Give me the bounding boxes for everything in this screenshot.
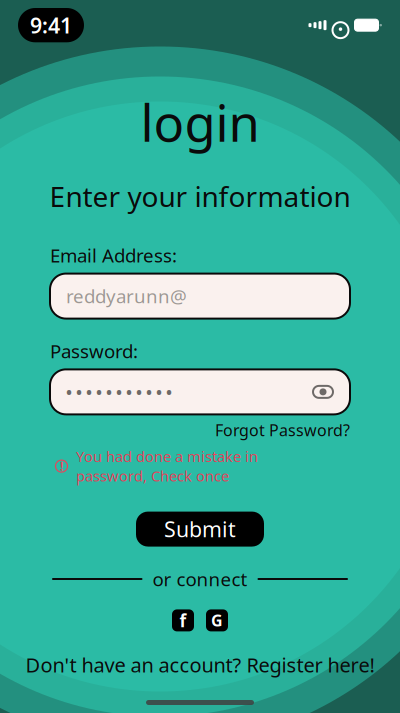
staticText: Enter your information: [49, 178, 350, 215]
staticText: !: [60, 458, 63, 474]
staticText: Don't have an account? Register here!: [25, 651, 374, 678]
staticText: Forgot Password?: [215, 419, 350, 441]
button[interactable]: Submit: [136, 512, 264, 547]
staticText: You had done a mistake in password, Chec…: [76, 447, 258, 486]
staticText: Submit: [164, 515, 236, 543]
button[interactable]: reddyarunn@: [50, 274, 350, 319]
button[interactable]: • • • • • • • • • • •: [50, 369, 350, 414]
staticText: reddyarunn@: [66, 284, 187, 308]
staticText: Password:: [50, 339, 138, 363]
button[interactable]: Don't have an account? Register here!: [25, 651, 374, 678]
button[interactable]: Continue with Google: [206, 609, 228, 631]
staticText: f: [179, 609, 186, 632]
button[interactable]: Forgot Password?: [215, 419, 350, 441]
staticText: • • • • • • • • • • •: [66, 381, 172, 402]
button[interactable]: Continue with Facebook: [172, 609, 194, 631]
staticText: or connect: [152, 567, 247, 591]
staticText: Email Address:: [50, 243, 177, 268]
staticText: login: [140, 88, 259, 156]
staticText: 9:41: [30, 11, 72, 39]
staticText: G: [211, 610, 223, 631]
